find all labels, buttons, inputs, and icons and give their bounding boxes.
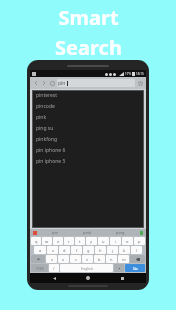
staticText: Go <box>133 266 138 271</box>
button[interactable]: pin iphone 6 <box>32 145 144 156</box>
button[interactable]: f <box>71 246 82 254</box>
staticText: 18:15 <box>136 72 144 76</box>
button[interactable]: ?123 <box>31 264 48 272</box>
staticText: ?123 <box>36 266 44 271</box>
button[interactable]: Back <box>44 273 64 283</box>
button[interactable]: o <box>122 237 133 245</box>
staticText: / <box>53 266 55 271</box>
staticText: pink <box>36 114 47 121</box>
staticText: ping su <box>36 125 54 132</box>
button[interactable]: c <box>70 255 81 263</box>
button[interactable]: l <box>131 246 142 254</box>
button[interactable]: w <box>42 237 52 245</box>
button[interactable]: r <box>64 237 74 245</box>
staticText: w <box>45 239 49 244</box>
button[interactable]: ping <box>104 229 137 236</box>
staticText: h <box>99 248 102 253</box>
staticText: pin iphone 6 <box>36 147 66 154</box>
staticText: j <box>112 248 114 253</box>
button[interactable]: Bookmark <box>136 79 144 87</box>
staticText: f <box>76 248 78 253</box>
button[interactable]: pink <box>71 229 104 236</box>
staticText: b <box>98 257 101 262</box>
staticText: c <box>75 257 77 262</box>
staticText: z <box>51 257 53 262</box>
staticText: English <box>81 266 93 271</box>
button[interactable]: t <box>75 237 85 245</box>
staticText: pincode <box>36 103 55 110</box>
button[interactable]: Shift <box>31 255 45 263</box>
staticText: pinkfong <box>36 136 58 143</box>
button[interactable]: e <box>53 237 63 245</box>
staticText: k <box>123 248 126 253</box>
staticText: pin <box>58 80 66 87</box>
button[interactable]: Reload <box>48 79 56 87</box>
button[interactable]: q <box>31 237 41 245</box>
button[interactable]: Clipboard <box>30 229 39 236</box>
button[interactable]: More suggestions <box>137 229 146 236</box>
button[interactable]: pin iphone 5 <box>32 156 144 167</box>
button[interactable]: x <box>58 255 69 263</box>
button[interactable]: d <box>59 246 70 254</box>
button[interactable]: v <box>82 255 93 263</box>
button[interactable]: pin <box>39 229 71 236</box>
button[interactable]: b <box>94 255 105 263</box>
staticText: t <box>79 239 81 244</box>
button[interactable]: pinterest <box>32 90 144 101</box>
button[interactable]: ping su <box>32 123 144 134</box>
button[interactable]: i <box>110 237 121 245</box>
staticText: o <box>126 239 129 244</box>
button[interactable]: pink <box>32 112 144 123</box>
staticText: p <box>138 239 141 244</box>
staticText: y <box>90 239 93 244</box>
button[interactable]: English <box>60 264 113 272</box>
button[interactable]: Period <box>114 264 124 272</box>
button[interactable]: Back <box>32 79 40 87</box>
button[interactable]: Recents <box>112 273 132 283</box>
staticText: 17% <box>125 72 131 76</box>
staticText: pin iphone 5 <box>36 158 66 165</box>
staticText: l <box>136 248 138 253</box>
staticText: pinterest <box>36 92 58 99</box>
button[interactable]: Backspace <box>130 255 145 263</box>
button[interactable]: j <box>107 246 118 254</box>
button[interactable]: pinkfong <box>32 134 144 145</box>
staticText: i <box>115 239 117 244</box>
staticText: v <box>86 257 89 262</box>
button[interactable]: s <box>47 246 58 254</box>
button[interactable]: a <box>34 246 46 254</box>
staticText: Search <box>55 34 122 61</box>
staticText: pink <box>83 230 92 235</box>
button[interactable]: h <box>95 246 106 254</box>
staticText: d <box>63 248 66 253</box>
button[interactable]: pin <box>57 79 135 87</box>
staticText: n <box>110 257 113 262</box>
button[interactable]: n <box>106 255 117 263</box>
button[interactable]: / <box>49 264 59 272</box>
button[interactable]: y <box>86 237 97 245</box>
staticText: Smart <box>58 4 119 31</box>
button[interactable]: p <box>134 237 145 245</box>
staticText: a <box>39 248 42 253</box>
staticText: m <box>122 257 126 262</box>
button[interactable]: Home <box>78 273 98 283</box>
staticText: g <box>87 248 90 253</box>
staticText: r <box>68 239 70 244</box>
button[interactable]: pincode <box>32 101 144 112</box>
staticText: e <box>57 239 60 244</box>
button[interactable]: k <box>119 246 130 254</box>
staticText: u <box>102 239 105 244</box>
staticText: q <box>35 239 38 244</box>
staticText: pin <box>52 230 58 235</box>
button[interactable]: Search <box>125 264 145 272</box>
staticText: ping <box>116 230 125 235</box>
staticText: s <box>52 248 54 253</box>
staticText: x <box>62 257 65 262</box>
button[interactable]: Forward <box>40 79 48 87</box>
button[interactable]: g <box>83 246 94 254</box>
button[interactable]: m <box>118 255 129 263</box>
button[interactable]: u <box>98 237 109 245</box>
button[interactable]: z <box>46 255 57 263</box>
